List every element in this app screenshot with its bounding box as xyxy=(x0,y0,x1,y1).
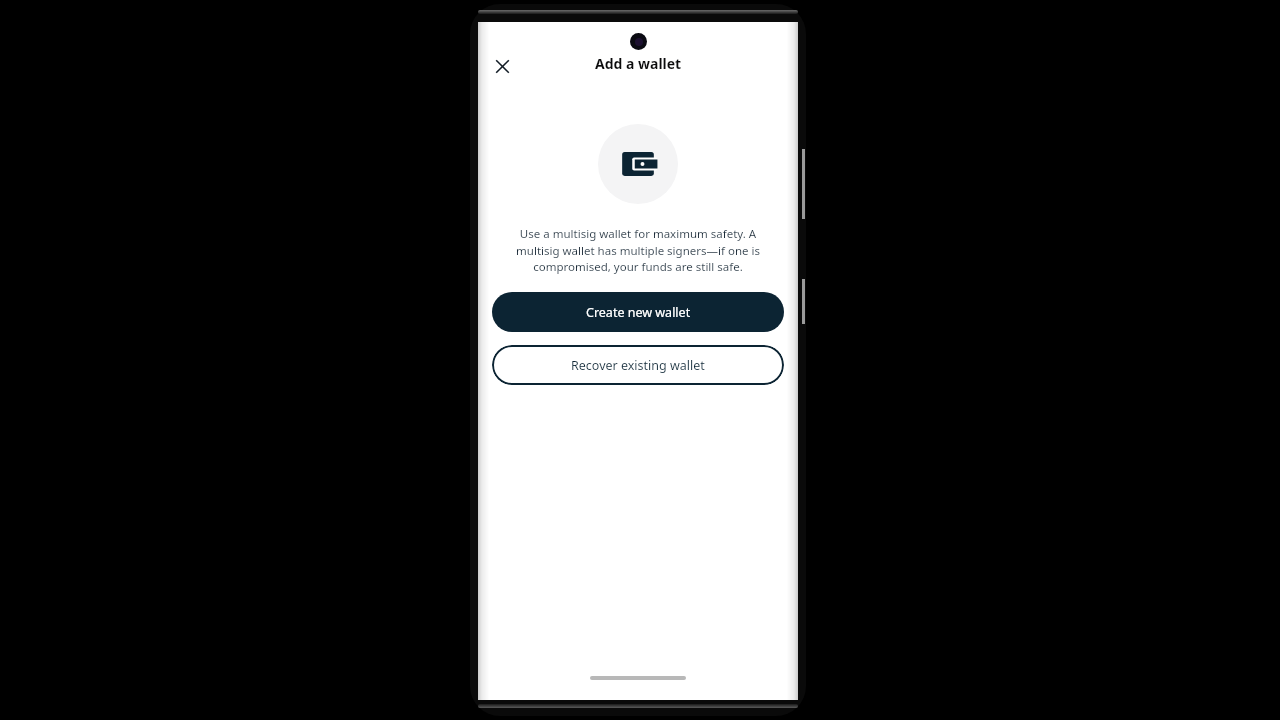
button[interactable]: Create new wallet xyxy=(492,292,784,332)
staticText: Use a multisig wallet for maximum safety… xyxy=(507,226,769,274)
staticText: Create new wallet xyxy=(586,304,691,321)
button[interactable]: Close xyxy=(484,48,520,84)
button[interactable]: Recover existing wallet xyxy=(492,345,784,385)
staticText: Recover existing wallet xyxy=(571,357,705,374)
staticText: Add a wallet xyxy=(595,54,682,73)
